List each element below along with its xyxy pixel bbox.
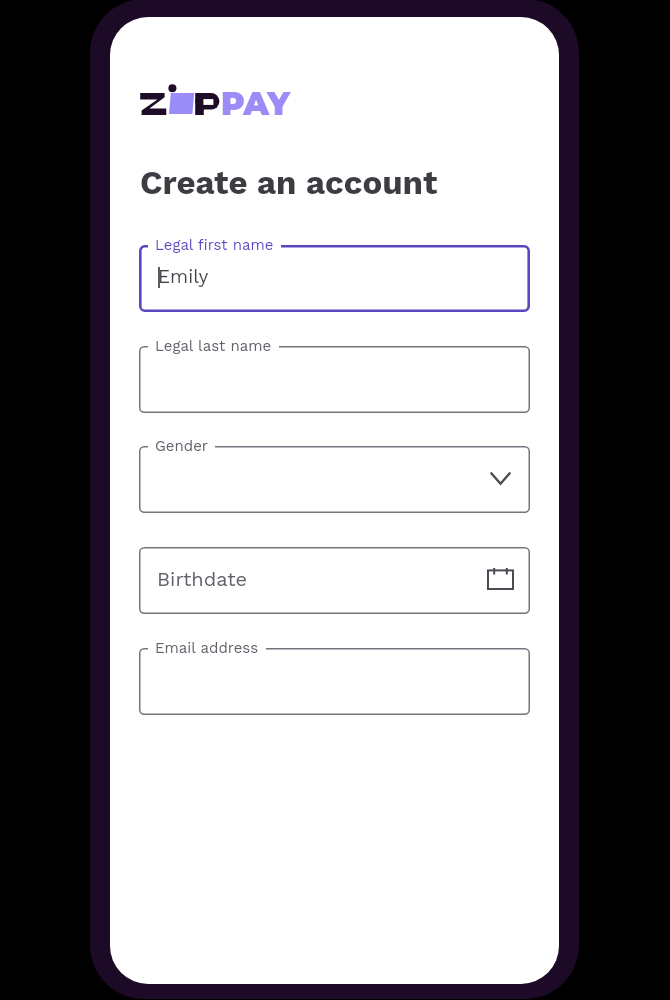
staticText: Emily [158, 265, 209, 287]
other: Open dropdown [490, 472, 511, 485]
staticText: Birthdate [157, 567, 248, 590]
button[interactable]: Legal last name [139, 346, 530, 413]
staticText: Legal first name [155, 236, 274, 254]
button[interactable]: Email address [139, 648, 530, 715]
button[interactable]: Legal first name [139, 245, 530, 312]
staticText: Email address [155, 639, 259, 657]
button[interactable]: Gender [139, 446, 530, 513]
staticText: Create an account [140, 163, 438, 202]
other: Pick date [487, 567, 514, 590]
other: Zip Pay [140, 84, 296, 117]
staticText: Gender [155, 437, 208, 455]
button[interactable]: Birthdate [139, 547, 530, 614]
staticText: Legal last name [155, 337, 272, 355]
staticText: PAY [221, 84, 291, 117]
